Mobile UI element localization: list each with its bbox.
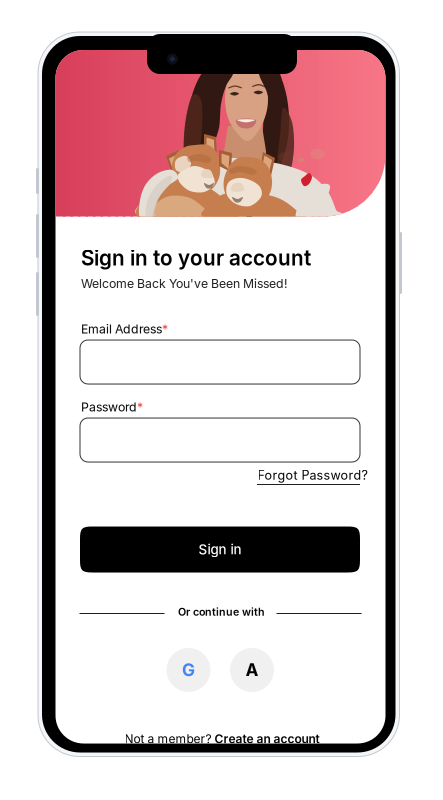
- staticText: Sign in: [198, 541, 241, 557]
- staticText: Or continue with: [178, 605, 265, 618]
- staticText: G: [182, 659, 195, 680]
- staticText: Welcome Back You've Been Missed!: [81, 276, 288, 291]
- staticText: Not a member?: [124, 731, 214, 746]
- staticText: Forgot Password?: [257, 467, 367, 483]
- staticText: A: [245, 659, 258, 680]
- staticText: Email Address: [81, 321, 162, 336]
- staticText: *: [137, 399, 143, 414]
- staticText: Password: [81, 399, 137, 414]
- staticText: *: [162, 321, 168, 336]
- staticText: Create an account: [214, 731, 319, 746]
- staticText: Sign in to your account: [81, 245, 311, 270]
